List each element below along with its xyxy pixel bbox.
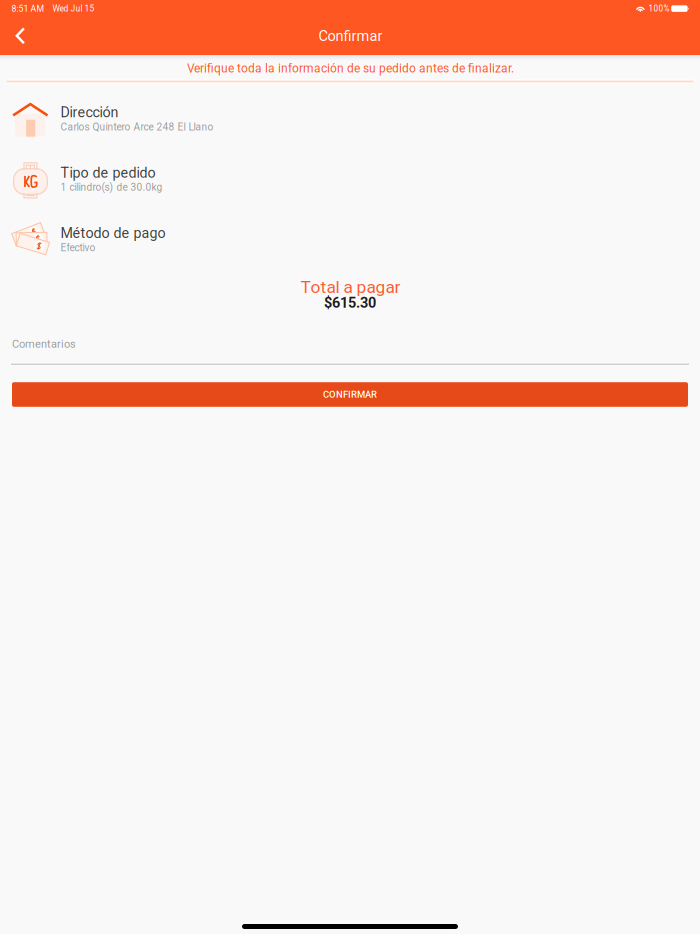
staticText: Verifique toda la información de su pedi… (187, 61, 514, 76)
staticText: Tipo de pedido (61, 164, 156, 181)
staticText: Confirmar (318, 27, 382, 44)
staticText: 100% (648, 4, 669, 13)
staticText: Efectivo (61, 242, 96, 254)
button[interactable]: Back (6, 17, 50, 55)
button[interactable]: Método de pago (0, 210, 700, 270)
button[interactable]: Dirección (0, 89, 700, 149)
staticText: $615.30 (324, 294, 376, 311)
staticText: Método de pago (61, 225, 166, 241)
staticText: Dirección (61, 104, 119, 121)
staticText: Comentarios (12, 337, 76, 350)
staticText: Total a pagar (300, 277, 400, 297)
button[interactable]: CONFIRMAR (12, 382, 688, 407)
staticText: 1 cilindro(s) de 30.0kg (61, 181, 163, 193)
staticText: 8:51 AM (12, 4, 45, 14)
staticText: CONFIRMAR (323, 389, 377, 400)
staticText: Carlos Quintero Arce 248 El Llano (61, 121, 214, 133)
staticText: Wed Jul 15 (53, 4, 95, 14)
button[interactable]: Tipo de pedido (0, 149, 700, 209)
